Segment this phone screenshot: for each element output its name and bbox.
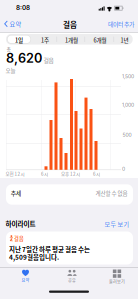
button[interactable]: 걸음 bbox=[6, 231, 133, 264]
staticText: 걸음 bbox=[14, 235, 24, 242]
button[interactable]: 둘러보기 bbox=[97, 269, 137, 285]
staticText: 1년 bbox=[120, 36, 128, 44]
staticText: 오늘 bbox=[5, 66, 15, 74]
button[interactable]: 모두 보기 bbox=[102, 220, 129, 228]
staticText: 1,500 bbox=[122, 73, 134, 79]
staticText: 요약 bbox=[21, 277, 29, 283]
staticText: 공유 bbox=[68, 277, 76, 283]
staticText: 500 bbox=[122, 132, 131, 138]
staticText: 하이라이트 bbox=[5, 219, 35, 228]
staticText: 계산할 수 없음 bbox=[95, 189, 127, 197]
staticText: 8,620 bbox=[6, 50, 42, 66]
staticText: 지난 7일간 하루 평균 걸음 수는 bbox=[9, 244, 90, 254]
staticText: 오후 12시 bbox=[61, 170, 80, 177]
staticText: 걸음 bbox=[63, 19, 77, 30]
button[interactable]: 요약 bbox=[5, 269, 45, 283]
staticText: 요약 bbox=[9, 19, 21, 28]
staticText: 총 bbox=[6, 45, 10, 52]
staticText: 추세 bbox=[11, 189, 21, 197]
staticText: 둘러보기 bbox=[109, 279, 125, 285]
staticText: 오전 12시 bbox=[5, 170, 24, 177]
button[interactable]: 1개월 bbox=[57, 36, 85, 44]
staticText: 1,000 bbox=[122, 102, 134, 108]
staticText: 1일 bbox=[15, 36, 23, 44]
staticText: 0 bbox=[122, 166, 125, 172]
button[interactable]: 추세 bbox=[6, 184, 133, 205]
button[interactable]: 요약 bbox=[4, 19, 21, 28]
button[interactable]: 데이터 추가 bbox=[104, 20, 134, 28]
staticText: 6시 bbox=[93, 170, 100, 177]
staticText: 4,509걸음입니다. bbox=[9, 252, 59, 262]
staticText: 1주 bbox=[41, 36, 49, 44]
staticText: 걸음 bbox=[43, 56, 53, 64]
staticText: 8:08 bbox=[16, 4, 30, 12]
button[interactable]: 1일 bbox=[7, 36, 31, 44]
staticText: 1개월 bbox=[65, 36, 78, 44]
button[interactable]: 1년 bbox=[115, 36, 134, 44]
button[interactable]: 6개월 bbox=[86, 36, 114, 44]
staticText: 데이터 추가 bbox=[108, 20, 134, 28]
button[interactable]: 공유 bbox=[52, 269, 92, 283]
staticText: 6시 bbox=[41, 170, 48, 177]
staticText: 6개월 bbox=[93, 36, 106, 44]
staticText: 모두 보기 bbox=[104, 220, 129, 228]
button[interactable]: 1주 bbox=[33, 36, 57, 44]
